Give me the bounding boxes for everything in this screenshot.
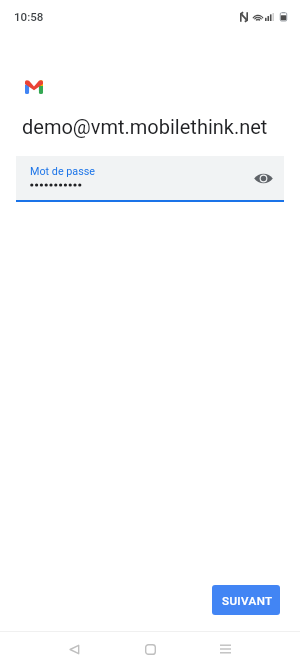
button[interactable]: Mot de passe (16, 156, 284, 200)
button[interactable]: Back (56, 631, 92, 667)
staticText: Mot de passe (30, 165, 96, 178)
staticText: SUIVANT (222, 594, 273, 608)
button[interactable]: SUIVANT (212, 585, 280, 615)
button[interactable]: Afficher le mot de passe (251, 166, 275, 190)
button[interactable]: Home (132, 631, 168, 667)
button[interactable]: Recent apps (207, 631, 243, 667)
staticText: 10:58 (14, 10, 44, 24)
staticText: demo@vmt.mobilethink.net (22, 115, 268, 138)
